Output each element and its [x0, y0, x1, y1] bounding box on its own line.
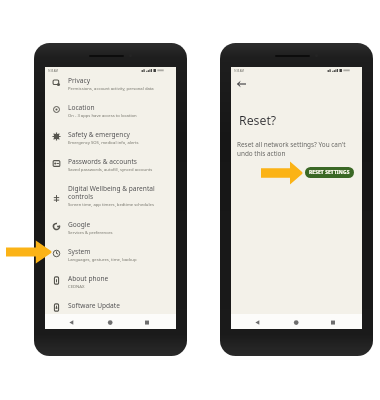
staticText: 9:35 AM — [48, 69, 58, 73]
button[interactable]: Safety & emergency — [45, 129, 176, 156]
button[interactable]: RESET SETTINGS — [305, 167, 354, 178]
staticText: Emergency SOS, medical info, alerts — [68, 140, 139, 146]
staticText: Google — [68, 220, 91, 229]
staticText: System — [68, 247, 91, 256]
staticText: Services & preferences — [68, 230, 113, 236]
staticText: Languages, gestures, time, backup — [68, 257, 137, 263]
staticText: RESET SETTINGS — [309, 169, 350, 176]
staticText: Passwords & accounts — [68, 157, 137, 166]
staticText: Permissions, account activity, personal … — [68, 86, 154, 92]
staticText: Reset? — [239, 112, 277, 129]
button[interactable]: Google — [45, 219, 176, 246]
staticText: Location — [68, 103, 95, 112]
staticText: Digital Wellbeing & parental controls — [68, 184, 158, 201]
staticText: About phone — [68, 274, 109, 283]
button[interactable]: Privacy — [45, 75, 176, 102]
staticText: On - 3 apps have access to location — [68, 113, 137, 119]
button[interactable]: System — [45, 246, 176, 273]
staticText: Privacy — [68, 76, 90, 85]
staticText: 9:35 AM — [234, 69, 244, 73]
staticText: Safety & emergency — [68, 130, 130, 139]
staticText: Software Update — [68, 301, 120, 310]
button[interactable]: Location — [45, 102, 176, 129]
button[interactable]: About phone — [45, 273, 176, 300]
button[interactable]: Back — [233, 75, 250, 92]
staticText: Screen time, app timers, bedtime schedul… — [68, 202, 154, 208]
staticText: CEDNAX — [68, 284, 85, 290]
button[interactable]: Software Update — [45, 300, 176, 327]
button[interactable]: Digital Wellbeing & parental controls — [45, 183, 176, 219]
staticText: Saved passwords, autofill, synced accoun… — [68, 167, 153, 173]
button[interactable]: Passwords & accounts — [45, 156, 176, 183]
staticText: Reset all network settings? You can't un… — [237, 140, 346, 157]
